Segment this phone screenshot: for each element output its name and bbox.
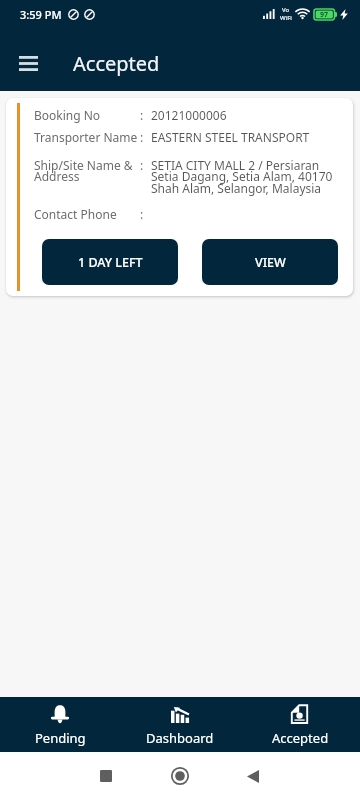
staticText: Contact Phone — [34, 206, 140, 222]
button[interactable]: Recents — [86, 756, 126, 796]
staticText: SETIA CITY MALL 2 / Persiaran Setia Daga… — [151, 157, 333, 197]
button[interactable]: Dashboard — [120, 697, 240, 752]
button[interactable]: Home — [160, 756, 200, 796]
staticText: Dashboard — [146, 729, 214, 747]
staticText: : — [140, 107, 151, 123]
staticText: : — [140, 206, 151, 222]
button[interactable]: Pending — [0, 697, 120, 752]
button[interactable]: Back — [233, 756, 273, 796]
staticText: Ship/Site Name & Address — [34, 157, 140, 185]
staticText: Accepted — [73, 50, 160, 77]
staticText: Pending — [35, 729, 86, 747]
staticText: 20121000006 — [151, 107, 227, 123]
staticText: EASTERN STEEL TRANSPORT — [151, 129, 310, 145]
staticText: Transporter Name — [34, 129, 140, 145]
staticText: WiFi — [280, 14, 292, 22]
staticText: : — [140, 129, 151, 145]
staticText: : — [140, 157, 151, 173]
button[interactable]: VIEW — [202, 239, 338, 285]
staticText: 3:59 PM — [20, 7, 62, 22]
button[interactable]: Accepted — [240, 697, 360, 752]
staticText: 1 DAY LEFT — [78, 254, 143, 271]
staticText: 97 — [320, 10, 329, 20]
button[interactable]: 1 DAY LEFT — [42, 239, 178, 285]
staticText: VIEW — [255, 254, 286, 271]
staticText: Booking No — [34, 107, 140, 123]
staticText: Accepted — [272, 729, 329, 747]
staticText: Vo — [282, 6, 290, 14]
button[interactable]: Menu — [8, 43, 48, 83]
